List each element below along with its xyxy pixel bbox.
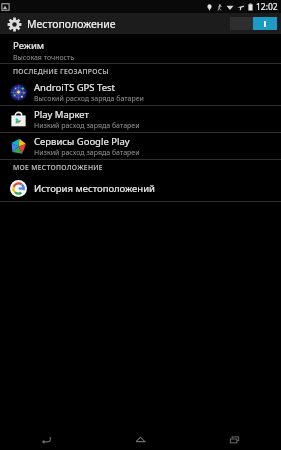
staticText: ПОСЛЕДНИЕ ГЕОЗАПРОСЫ (13, 67, 109, 76)
staticText: Низкий расход заряда батареи (34, 148, 140, 158)
staticText: Play Маркет (34, 108, 89, 121)
staticText: Низкий расход заряда батареи (34, 121, 140, 131)
staticText: Режим (13, 39, 45, 52)
button[interactable]: Сервисы Google Play (0, 133, 281, 159)
staticText: МОЕ МЕСТОПОЛОЖЕНИЕ (13, 163, 103, 172)
staticText: Высокий расход заряда батареи (34, 94, 144, 104)
button[interactable]: Play Маркет (0, 106, 281, 132)
staticText: История местоположений (34, 182, 155, 195)
staticText: Сервисы Google Play (34, 135, 130, 148)
button[interactable]: Настройки (5, 15, 23, 33)
button[interactable]: Главный экран (93, 428, 187, 450)
staticText: AndroiTS GPS Test (34, 81, 115, 94)
button[interactable]: Переключатель определения местоположения (230, 17, 277, 30)
staticText: Местоположение (27, 17, 116, 31)
staticText: Высокая точность (13, 53, 75, 63)
button[interactable]: Назад (0, 428, 93, 450)
staticText: 12:02 (256, 1, 278, 13)
button[interactable]: AndroiTS GPS Test (0, 79, 281, 105)
button[interactable]: Режим (0, 35, 281, 63)
button[interactable]: Обзор приложений (187, 428, 281, 450)
button[interactable]: История местоположений (0, 175, 281, 201)
